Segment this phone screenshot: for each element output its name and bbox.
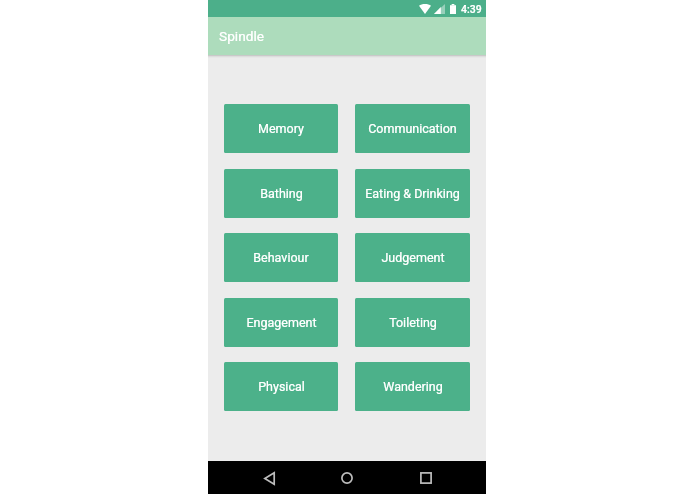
- button[interactable]: Back: [256, 465, 282, 491]
- staticText: Behaviour: [253, 250, 309, 265]
- button[interactable]: Bathing: [224, 169, 338, 218]
- button[interactable]: Engagement: [224, 298, 338, 347]
- staticText: Wandering: [383, 379, 443, 394]
- staticText: Communication: [368, 121, 457, 136]
- staticText: Spindle: [219, 28, 265, 44]
- staticText: Engagement: [246, 315, 317, 330]
- button[interactable]: Wandering: [355, 362, 470, 411]
- button[interactable]: Judgement: [355, 233, 470, 282]
- button[interactable]: Recents: [413, 465, 439, 491]
- button[interactable]: Communication: [355, 104, 470, 153]
- staticText: Toileting: [389, 315, 437, 330]
- staticText: Judgement: [381, 250, 445, 265]
- button[interactable]: Behaviour: [224, 233, 338, 282]
- staticText: 4:39: [461, 3, 482, 15]
- button[interactable]: Toileting: [355, 298, 470, 347]
- button[interactable]: Eating & Drinking: [355, 169, 470, 218]
- button[interactable]: Memory: [224, 104, 338, 153]
- staticText: Eating & Drinking: [365, 186, 460, 201]
- staticText: Physical: [258, 379, 305, 394]
- button[interactable]: Home: [334, 465, 360, 491]
- button[interactable]: Physical: [224, 362, 338, 411]
- staticText: Memory: [258, 121, 304, 136]
- staticText: Bathing: [260, 186, 303, 201]
